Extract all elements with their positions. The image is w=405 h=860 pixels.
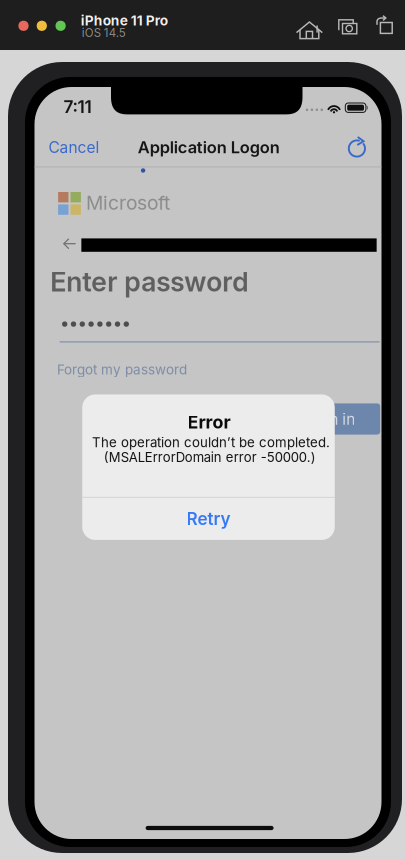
staticText: Retry <box>186 508 230 529</box>
button[interactable]: Screenshot <box>333 11 363 41</box>
staticText: Error <box>188 411 231 433</box>
staticText: 7:11 <box>63 97 91 117</box>
button[interactable]: Retry <box>82 498 335 540</box>
staticText: Forgot my password <box>57 361 187 378</box>
staticText: Microsoft <box>86 191 170 214</box>
staticText: Sign in <box>306 410 355 428</box>
staticText: Enter password <box>50 266 248 298</box>
button[interactable]: Home <box>294 11 324 41</box>
button[interactable]: Sign in <box>281 403 380 435</box>
staticText: The operation couldn’t be completed. <box>92 434 330 450</box>
staticText: (MSALErrorDomain error -50000.) <box>104 449 316 465</box>
staticText: iPhone 11 Pro <box>81 12 168 29</box>
button[interactable]: Cancel <box>41 130 107 164</box>
staticText: iOS 14.5 <box>82 26 126 40</box>
staticText: Cancel <box>49 138 100 157</box>
button[interactable]: Reload <box>340 131 374 165</box>
staticText: Application Logon <box>138 137 280 157</box>
button[interactable]: Share <box>371 11 401 41</box>
